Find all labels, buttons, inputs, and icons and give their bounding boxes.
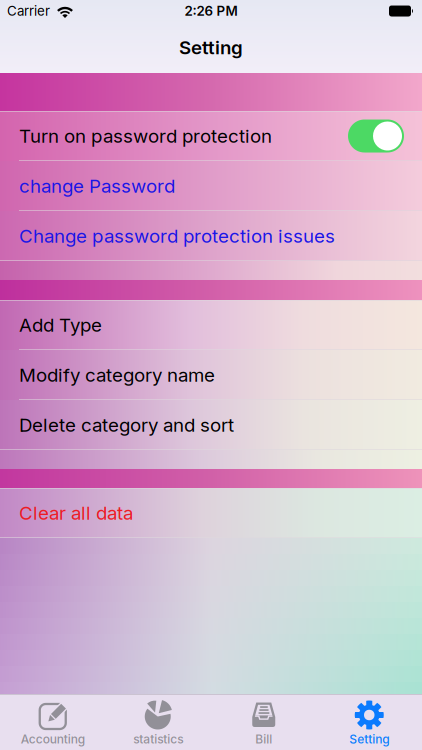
button[interactable]: Accounting	[0, 700, 105, 746]
button[interactable]: Delete category and sort	[0, 400, 422, 450]
staticText: Add Type	[19, 314, 102, 336]
button[interactable]: Add Type	[0, 300, 422, 350]
staticText: Turn on password protection	[19, 125, 272, 147]
button[interactable]: statistics	[105, 700, 211, 746]
staticText: statistics	[133, 732, 183, 746]
staticText: Modify category name	[19, 364, 215, 386]
staticText: Delete category and sort	[19, 414, 234, 436]
staticText: 2:26 PM	[184, 3, 237, 19]
button[interactable]: Clear all data	[0, 488, 422, 538]
button[interactable]: Turn on password protection	[348, 119, 404, 152]
staticText: Change password protection issues	[19, 225, 335, 247]
staticText: Accounting	[21, 732, 85, 746]
button[interactable]: change Password	[0, 161, 422, 211]
staticText: Carrier	[7, 3, 50, 19]
staticText: Clear all data	[19, 502, 133, 524]
button[interactable]: Change password protection issues	[0, 211, 422, 261]
staticText: change Password	[19, 175, 175, 197]
staticText: Bill	[255, 732, 272, 746]
staticText: Setting	[349, 732, 389, 746]
staticText: Setting	[179, 36, 243, 58]
button[interactable]: Setting	[316, 700, 422, 746]
button[interactable]: Modify category name	[0, 350, 422, 400]
button[interactable]: Bill	[211, 700, 316, 746]
